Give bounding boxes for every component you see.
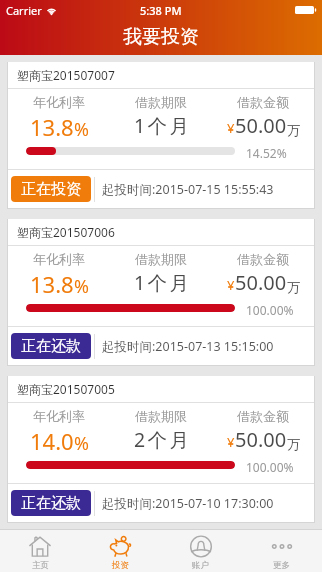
staticText: 14.0 [30, 426, 74, 456]
staticText: % [74, 274, 89, 299]
button[interactable]: 塑商宝201507005 [8, 376, 314, 522]
staticText: 塑商宝201507005 [17, 381, 115, 397]
staticText: 借款期限 [135, 408, 187, 424]
staticText: 14.52% [246, 145, 287, 161]
staticText: 塑商宝201507007 [17, 67, 115, 83]
staticText: 借款金额 [237, 251, 289, 267]
staticText: 年化利率 [33, 251, 85, 267]
staticText: 更多 [273, 560, 290, 571]
staticText: ¥ [227, 433, 235, 451]
staticText: 账户 [192, 560, 209, 571]
button[interactable]: 账户 Account [160, 530, 241, 572]
button[interactable]: 更多 More [241, 530, 322, 572]
staticText: 1个月 [134, 112, 192, 139]
staticText: ¥ [227, 119, 235, 137]
button[interactable]: 正在投资 [11, 176, 91, 202]
staticText: 借款期限 [135, 94, 187, 110]
staticText: 50.00 [235, 426, 287, 453]
button[interactable]: 正在还款 [11, 333, 91, 359]
staticText: 100.00% [246, 302, 294, 318]
button[interactable]: 投资 Invest [80, 530, 160, 572]
staticText: 13.8 [30, 112, 74, 142]
staticText: 50.00 [235, 269, 287, 296]
staticText: 正在还款 [21, 494, 81, 513]
staticText: 正在投资 [21, 180, 81, 199]
staticText: 13.8 [30, 269, 74, 299]
staticText: 主页 [32, 560, 49, 571]
staticText: 塑商宝201507006 [17, 224, 115, 240]
staticText: 50.00 [235, 112, 287, 139]
staticText: % [74, 117, 89, 142]
staticText: 5:38 PM [140, 3, 182, 18]
staticText: 我要投资 [123, 25, 199, 49]
staticText: 正在还款 [21, 337, 81, 356]
staticText: 起投时间:2015-07-10 17:30:00 [102, 495, 274, 512]
staticText: 1个月 [134, 269, 192, 296]
staticText: 万 [287, 279, 300, 295]
button[interactable]: 主页 Home [0, 530, 80, 572]
staticText: 年化利率 [33, 408, 85, 424]
staticText: 借款金额 [237, 408, 289, 424]
staticText: 2个月 [134, 426, 192, 453]
staticText: 万 [287, 122, 300, 138]
staticText: 借款金额 [237, 94, 289, 110]
staticText: 年化利率 [33, 94, 85, 110]
staticText: 起投时间:2015-07-15 15:55:43 [102, 181, 274, 198]
staticText: 100.00% [246, 459, 294, 475]
staticText: % [74, 431, 89, 456]
staticText: 万 [287, 436, 300, 452]
staticText: 起投时间:2015-07-13 15:15:00 [102, 338, 274, 355]
staticText: 借款期限 [135, 251, 187, 267]
button[interactable]: 正在还款 [11, 490, 91, 516]
staticText: Carrier [6, 3, 42, 18]
button[interactable]: 塑商宝201507007 [8, 62, 314, 208]
staticText: 投资 [112, 560, 129, 571]
button[interactable]: 塑商宝201507006 [8, 219, 314, 365]
staticText: ¥ [227, 276, 235, 294]
